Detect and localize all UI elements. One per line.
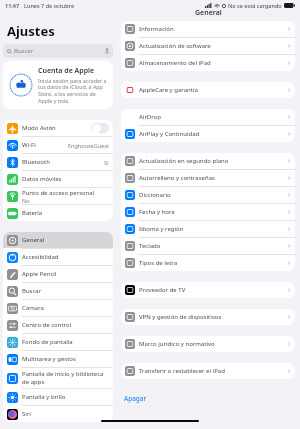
staticText: Punto de acceso personal [22,189,95,197]
button[interactable]: Cámara [3,300,113,316]
button[interactable]: Siri [3,406,113,422]
staticText: Pantalla y brillo [22,393,66,401]
staticText: Fecha y hora [139,208,287,216]
button[interactable]: Apple Pencil [3,266,113,282]
staticText: Wi-Fi [22,141,36,149]
button[interactable]: Fecha y hora [121,204,295,220]
button[interactable]: Punto de acceso personal [3,188,113,204]
staticText: No se está cargando [228,2,282,9]
staticText: Datos móviles [22,175,62,183]
button[interactable]: AppleCare y garantía [121,82,295,98]
staticText: AirPlay y Continuidad [139,130,287,138]
staticText: Apple Pencil [22,270,57,278]
button[interactable]: Actualización de software [121,38,295,54]
button[interactable]: Apagar [116,390,300,406]
staticText: Batería [22,209,43,217]
button[interactable]: Autorrelleno y contraseñas [121,170,295,186]
staticText: EnghouseGuest [68,142,109,149]
button[interactable]: Información [121,21,295,37]
staticText: Cuenta de Apple [38,66,95,76]
button[interactable]: Proveedor de TV [121,282,295,298]
staticText: Transferir o restablecer el iPad [139,367,287,375]
staticText: Autorrelleno y contraseñas [139,174,287,182]
staticText: Inicia sesión para acceder a tus datos d… [38,77,108,105]
button[interactable]: Wi-Fi [3,137,113,153]
staticText: Teclado [139,242,287,250]
button[interactable]: AirPlay y Continuidad [121,126,295,142]
button[interactable]: Cuenta de Apple [3,61,113,109]
button[interactable]: Actualización en segundo plano [121,153,295,169]
button[interactable]: Almacenamiento del iPad [121,55,295,71]
staticText: Idioma y región [139,225,287,233]
button[interactable]: Teclado [121,238,295,254]
staticText: Actualización de software [139,42,287,50]
staticText: AppleCare y garantía [139,86,287,94]
button[interactable]: Diccionario [121,187,295,203]
staticText: Cámara [22,304,44,312]
staticText: No [22,197,30,204]
staticText: Marco jurídico y normativo [139,340,287,348]
button[interactable]: Pantalla de inicio y biblioteca de apps [3,368,113,388]
button[interactable]: Idioma y región [121,221,295,237]
staticText: Lunes 7 de octubre [24,2,75,9]
staticText: Información [139,25,287,33]
staticText: Ajustes [7,22,55,40]
button[interactable]: General [3,232,113,248]
staticText: Bluetooth [22,158,50,166]
button[interactable]: Buscar [3,283,113,299]
button[interactable]: Modo Avión [3,120,113,136]
staticText: Diccionario [139,191,287,199]
button[interactable]: Modo Avión [91,123,109,133]
button[interactable]: Pantalla y brillo [3,389,113,405]
staticText: Proveedor de TV [139,286,287,294]
button[interactable]: Accesibilidad [3,249,113,265]
staticText: General [195,8,222,18]
button[interactable]: Transferir o restablecer el iPad [121,363,295,379]
staticText: Buscar [14,47,34,55]
staticText: Accesibilidad [22,253,59,261]
button[interactable]: Buscar [3,44,113,58]
button[interactable]: Batería [3,205,113,221]
staticText: AirDrop [139,113,287,121]
staticText: Tipos de letra [139,259,287,267]
button[interactable]: VPN y gestión de dispositivos [121,309,295,325]
button[interactable]: Centro de control [3,317,113,333]
button[interactable]: Datos móviles [3,171,113,187]
staticText: Pantalla de inicio y biblioteca de apps [22,370,109,386]
staticText: Buscar [22,287,42,295]
staticText: Sí [104,159,109,166]
staticText: VPN y gestión de dispositivos [139,313,287,321]
staticText: Almacenamiento del iPad [139,59,287,67]
button[interactable]: Marco jurídico y normativo [121,336,295,352]
button[interactable]: Tipos de letra [121,255,295,271]
staticText: Centro de control [22,321,72,329]
staticText: Actualización en segundo plano [139,157,287,165]
button[interactable]: AirDrop [121,109,295,125]
button[interactable]: Fondo de pantalla [3,334,113,350]
staticText: Modo Avión [22,124,56,132]
staticText: General [22,236,45,244]
staticText: Siri [22,410,31,418]
staticText: Apagar [124,394,147,403]
staticText: 11:47 [5,2,20,9]
staticText: Multitarea y gestos [22,355,76,363]
staticText: Fondo de pantalla [22,338,73,346]
button[interactable]: Multitarea y gestos [3,351,113,367]
button[interactable]: Bluetooth [3,154,113,170]
